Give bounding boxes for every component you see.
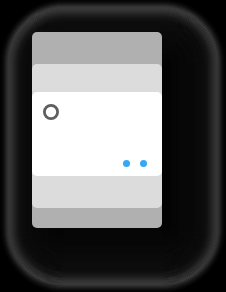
button[interactable]: Record	[32, 92, 162, 176]
other: Record	[43, 104, 59, 120]
